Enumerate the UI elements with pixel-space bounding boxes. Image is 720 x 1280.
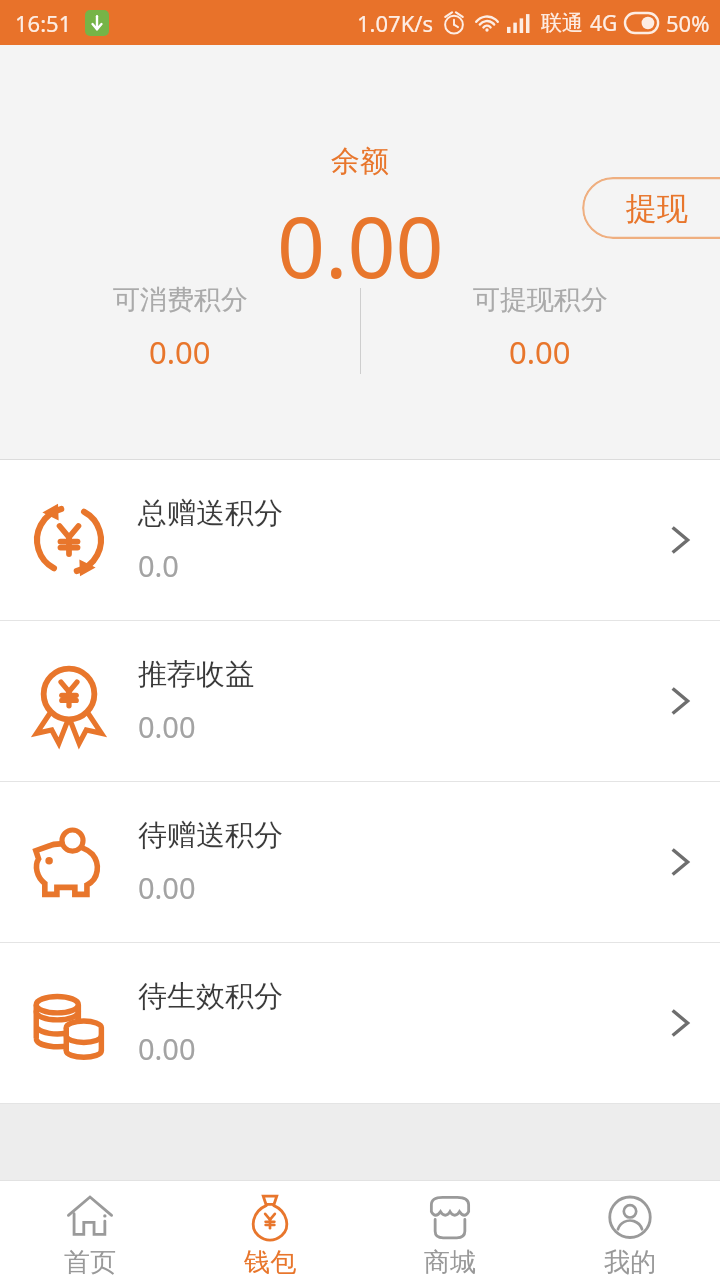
staticText: 我的 — [604, 1246, 656, 1279]
staticText: 50% — [666, 8, 710, 38]
staticText: 首页 — [64, 1246, 116, 1279]
staticText: 提现 — [626, 189, 688, 228]
staticText: 0.00 — [277, 188, 444, 302]
staticText: 0.00 — [149, 331, 211, 373]
button[interactable]: 首页 — [0, 1181, 180, 1280]
staticText: 联通 — [541, 10, 583, 36]
staticText: 16:51 — [15, 8, 72, 38]
staticText: 钱包 — [244, 1246, 296, 1279]
button[interactable]: 待生效积分 — [0, 943, 720, 1103]
button[interactable]: 总赠送积分 — [0, 460, 720, 620]
staticText: 可消费积分 — [113, 283, 248, 317]
staticText: 0.0 — [138, 546, 179, 585]
staticText: 0.00 — [138, 707, 196, 746]
button[interactable]: 钱包 — [180, 1181, 360, 1280]
staticText: 0.00 — [138, 1029, 196, 1068]
staticText: 推荐收益 — [138, 656, 254, 693]
staticText: 待生效积分 — [138, 978, 283, 1015]
staticText: 4G — [590, 9, 618, 38]
button[interactable]: 商城 — [360, 1181, 540, 1280]
staticText: 0.00 — [509, 331, 571, 373]
button[interactable]: 提现 — [582, 177, 720, 239]
staticText: 0.00 — [138, 868, 196, 907]
staticText: 待赠送积分 — [138, 817, 283, 854]
button[interactable]: 推荐收益 — [0, 621, 720, 781]
staticText: 余额 — [331, 143, 389, 180]
button[interactable]: 待赠送积分 — [0, 782, 720, 942]
staticText: 1.07K/s — [357, 8, 433, 38]
staticText: 可提现积分 — [473, 283, 608, 317]
staticText: 总赠送积分 — [138, 495, 283, 532]
staticText: 商城 — [424, 1246, 476, 1279]
button[interactable]: 我的 — [540, 1181, 720, 1280]
